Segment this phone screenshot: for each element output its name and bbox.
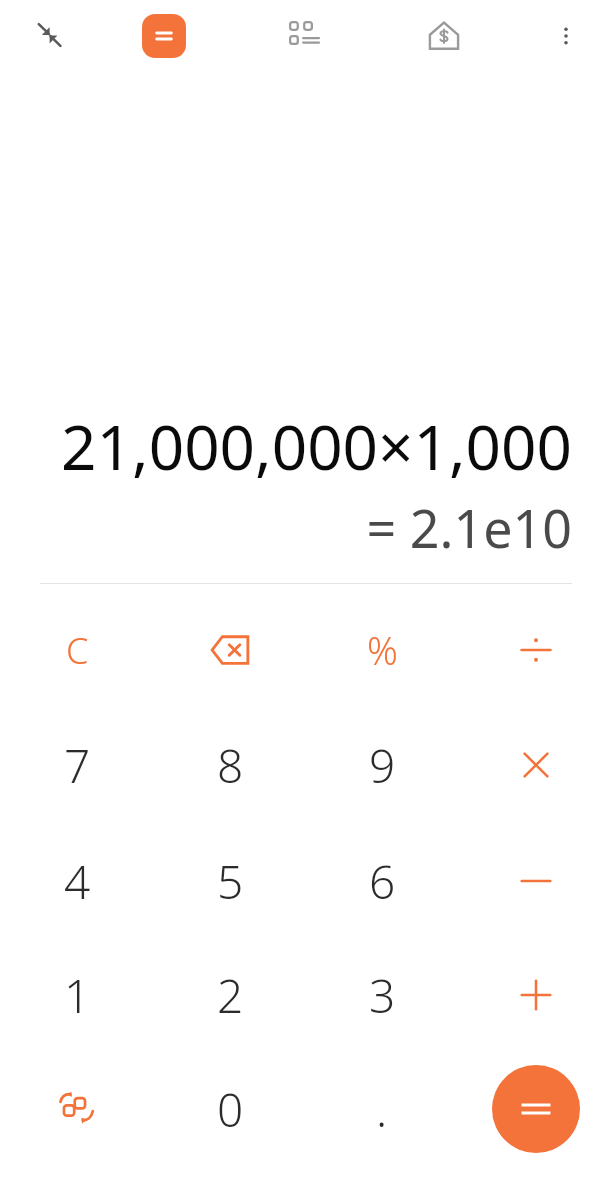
button[interactable]: Calculator [138, 10, 190, 62]
staticText: 0 [217, 1078, 244, 1141]
button[interactable]: % [312, 595, 452, 705]
staticText: 9 [369, 734, 396, 797]
staticText: 7 [64, 734, 91, 797]
button[interactable]: 7 [7, 710, 147, 820]
button[interactable]: Convert units [7, 1054, 147, 1164]
button[interactable]: Equals [492, 1065, 580, 1153]
button[interactable]: Unit converter [278, 10, 330, 62]
button[interactable]: 8 [160, 710, 300, 820]
button[interactable]: 1 [7, 940, 147, 1050]
staticText: 8 [217, 734, 244, 797]
button[interactable]: 4 [7, 826, 147, 936]
button[interactable]: Multiply [466, 710, 606, 820]
button[interactable]: 6 [312, 826, 452, 936]
staticText: 21,000,000×1,000 [40, 404, 572, 488]
staticText: 2 [217, 964, 244, 1027]
button[interactable]: Collapse [20, 6, 78, 64]
button[interactable]: 2 [160, 940, 300, 1050]
staticText: = 2.1e10 [40, 492, 572, 563]
button[interactable]: More options [540, 10, 592, 62]
staticText: . [376, 1078, 388, 1141]
staticText: 3 [369, 964, 396, 1027]
button[interactable]: Add [466, 940, 606, 1050]
staticText: C [66, 626, 89, 675]
staticText: 1 [64, 964, 91, 1027]
button[interactable]: 3 [312, 940, 452, 1050]
staticText: % [367, 624, 398, 676]
button[interactable]: Divide [466, 595, 606, 705]
staticText: 5 [217, 850, 244, 913]
staticText: 6 [369, 850, 396, 913]
staticText: 4 [64, 850, 91, 913]
button[interactable]: 5 [160, 826, 300, 936]
button[interactable]: Mortgage calculator [418, 10, 470, 62]
button[interactable]: Backspace [160, 595, 300, 705]
button[interactable]: Subtract [466, 826, 606, 936]
button[interactable]: . [312, 1054, 452, 1164]
button[interactable]: 0 [160, 1054, 300, 1164]
button[interactable]: C [7, 595, 147, 705]
button[interactable]: 9 [312, 710, 452, 820]
